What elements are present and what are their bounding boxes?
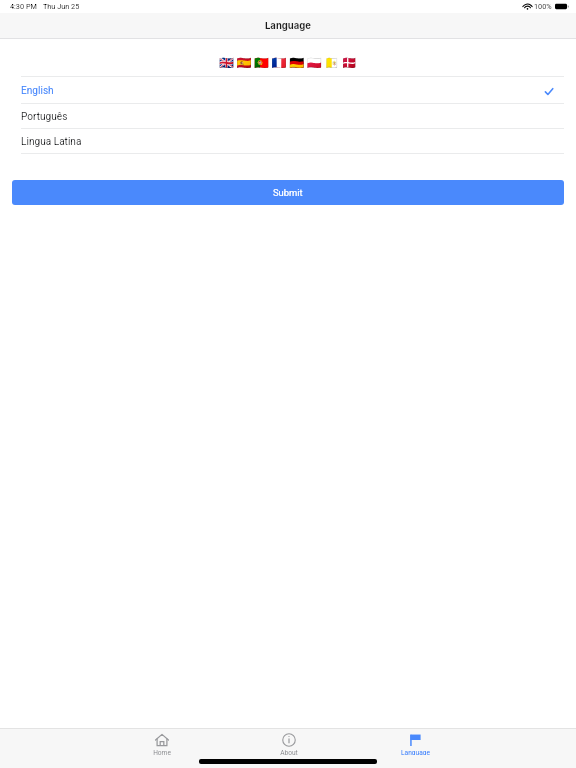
button[interactable]: Submit xyxy=(12,180,564,205)
staticText: Home xyxy=(153,749,171,755)
staticText: Thu Jun 25 xyxy=(43,2,80,11)
staticText: Language xyxy=(401,749,430,755)
button[interactable]: English xyxy=(0,77,576,103)
staticText: English xyxy=(21,85,54,97)
button[interactable]: Home xyxy=(131,729,193,755)
staticText: 🇬🇧🇪🇸🇵🇹🇫🇷🇩🇪🇵🇱🇻🇦🇩🇰 xyxy=(219,56,360,68)
staticText: Language xyxy=(265,20,311,31)
button[interactable]: Lingua Latina xyxy=(0,129,576,153)
staticText: Submit xyxy=(273,187,303,198)
button[interactable]: Português xyxy=(0,104,576,128)
button[interactable]: Language xyxy=(384,729,446,755)
staticText: 100% xyxy=(534,2,552,11)
button[interactable]: About xyxy=(258,729,320,755)
staticText: About xyxy=(280,749,298,755)
staticText: Lingua Latina xyxy=(21,136,82,148)
staticText: Português xyxy=(21,111,68,123)
staticText: 4:30 PM xyxy=(10,2,37,11)
